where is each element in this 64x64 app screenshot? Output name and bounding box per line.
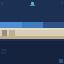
button[interactable] (0, 22, 64, 28)
button[interactable] (0, 28, 64, 39)
button[interactable]: Highlight (31, 2, 34, 5)
button[interactable]: Add (59, 59, 63, 63)
